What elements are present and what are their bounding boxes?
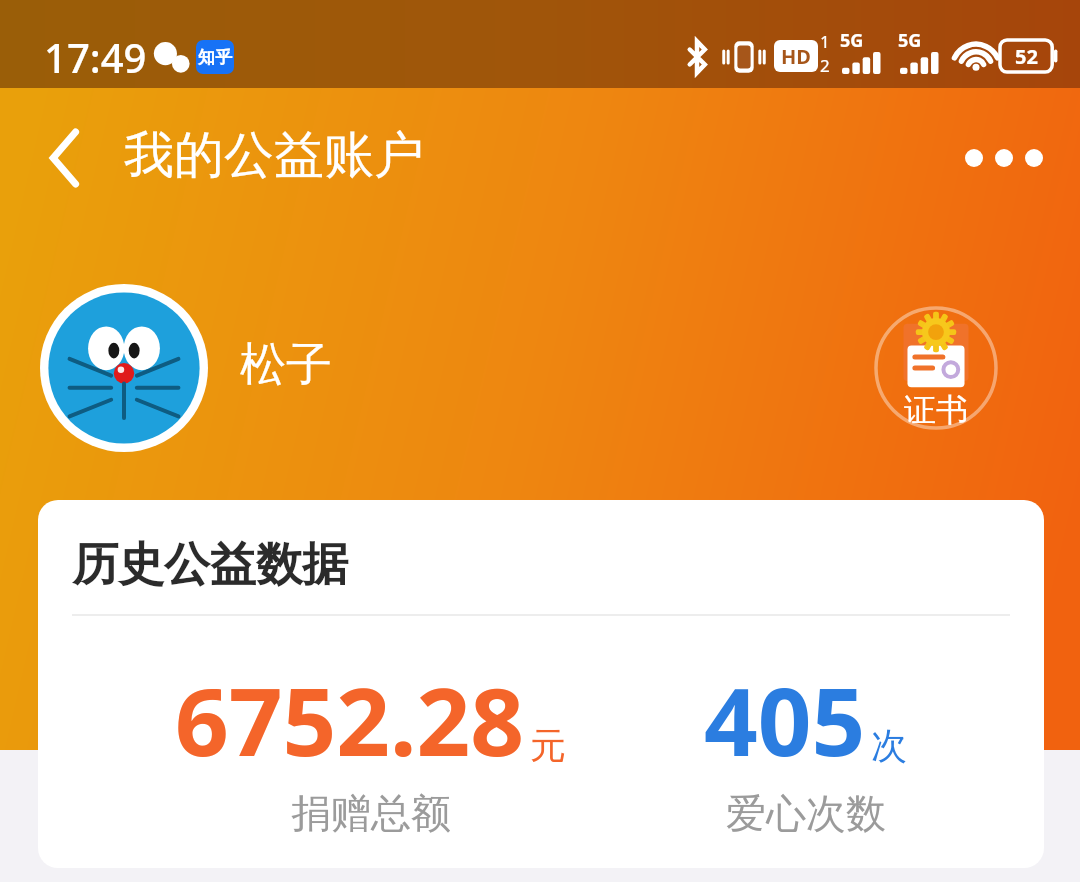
staticText: 知乎 (198, 47, 232, 68)
staticText: 次 (871, 723, 907, 768)
button[interactable]: Profile avatar (40, 284, 208, 452)
staticText: 5G (898, 28, 922, 53)
staticText: 2 (820, 54, 830, 77)
staticText: 5G (840, 28, 864, 53)
staticText: 历史公益数据 (72, 536, 348, 594)
staticText: 捐赠总额 (291, 788, 451, 838)
staticText: HD (781, 43, 811, 70)
button[interactable]: More options (948, 114, 1060, 202)
staticText: 松子 (240, 336, 332, 394)
staticText: 52 (1015, 43, 1038, 70)
staticText: 6752.28 (175, 656, 525, 784)
staticText: 我的公益账户 (124, 124, 424, 187)
button[interactable]: Back (22, 114, 110, 202)
staticText: 证书 (904, 390, 968, 430)
staticText: 17:49 (44, 30, 147, 84)
button[interactable]: 6752.28 (175, 656, 566, 838)
staticText: 爱心次数 (726, 788, 886, 838)
staticText: 405 (704, 656, 866, 784)
button[interactable]: 证书 Certificate (874, 306, 998, 430)
staticText: 元 (530, 723, 566, 768)
button[interactable]: 405 (704, 656, 907, 838)
staticText: 1 (820, 30, 830, 53)
